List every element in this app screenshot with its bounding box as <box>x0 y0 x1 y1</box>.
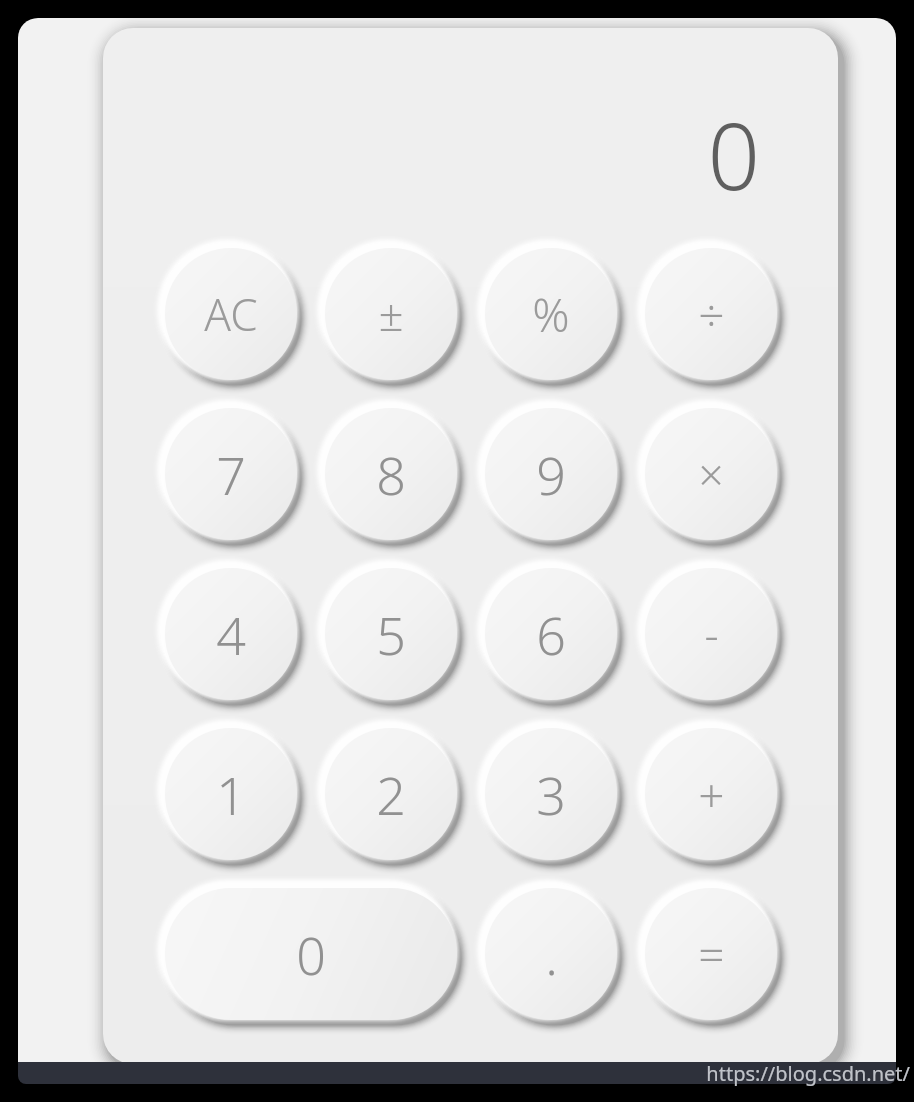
staticText: 7 <box>216 439 246 510</box>
staticText: 3 <box>536 759 566 830</box>
button[interactable]: 1 <box>165 728 297 860</box>
button[interactable]: Divide <box>645 248 777 380</box>
button[interactable]: 6 <box>485 568 617 700</box>
button[interactable]: 5 <box>325 568 457 700</box>
staticText: 0 <box>296 919 326 990</box>
staticText: 8 <box>376 439 406 510</box>
button[interactable]: AC <box>165 248 297 380</box>
staticText: = <box>698 923 725 986</box>
button[interactable]: 2 <box>325 728 457 860</box>
staticText: AC <box>204 284 258 344</box>
staticText: 9 <box>536 439 566 510</box>
staticText: 1 <box>216 759 246 830</box>
button[interactable]: Equals <box>645 888 777 1020</box>
button[interactable]: 7 <box>165 408 297 540</box>
staticText: 2 <box>376 759 406 830</box>
staticText: https://blog.csdn.net/weixin_44499689 <box>560 1060 910 1086</box>
button[interactable]: Multiply <box>645 408 777 540</box>
staticText: ± <box>378 284 404 344</box>
button[interactable]: 8 <box>325 408 457 540</box>
button[interactable]: 0 <box>165 888 457 1020</box>
staticText: . <box>545 919 558 990</box>
staticText: 4 <box>216 599 246 670</box>
staticText: 6 <box>536 599 566 670</box>
staticText: + <box>698 763 725 826</box>
button[interactable]: Plus <box>645 728 777 860</box>
staticText: × <box>698 444 724 504</box>
button[interactable]: Plus minus <box>325 248 457 380</box>
staticText: ÷ <box>698 283 725 346</box>
staticText: - <box>704 604 719 664</box>
button[interactable]: 4 <box>165 568 297 700</box>
button[interactable]: Percent <box>485 248 617 380</box>
staticText: 0 <box>707 92 760 212</box>
button[interactable]: 3 <box>485 728 617 860</box>
button[interactable]: Decimal point <box>485 888 617 1020</box>
button[interactable]: Minus <box>645 568 777 700</box>
staticText: % <box>532 283 570 346</box>
button[interactable]: 9 <box>485 408 617 540</box>
staticText: 5 <box>376 599 406 670</box>
